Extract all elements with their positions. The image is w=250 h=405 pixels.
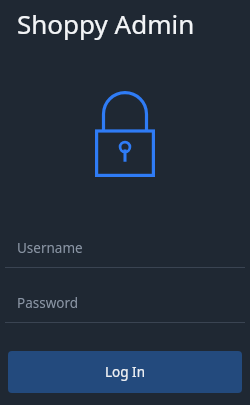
staticText: Password xyxy=(17,294,79,312)
button[interactable]: Username xyxy=(0,234,250,268)
button[interactable]: Log In xyxy=(8,351,242,393)
other: Secure login xyxy=(95,91,155,177)
staticText: Username xyxy=(17,239,83,257)
staticText: Log In xyxy=(105,363,145,381)
staticText: Shoppy Admin xyxy=(17,6,195,41)
button[interactable]: Password xyxy=(0,289,250,323)
